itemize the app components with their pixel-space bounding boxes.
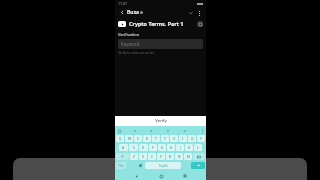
button[interactable]: Y (161, 135, 169, 142)
button[interactable]: W (125, 135, 133, 142)
button[interactable]: X (139, 153, 147, 160)
staticText: English (159, 164, 168, 168)
button[interactable]: Shift (116, 153, 129, 160)
staticText: E (137, 137, 139, 141)
staticText: Verification (118, 32, 140, 37)
button[interactable]: L (194, 144, 202, 151)
button[interactable]: Crypto Terms. Part 1 (118, 20, 203, 27)
button[interactable]: D (139, 144, 148, 151)
staticText: D (142, 146, 145, 150)
button[interactable]: R (143, 135, 151, 142)
staticText: Z (133, 155, 135, 159)
button[interactable]: S (129, 144, 138, 151)
staticText: V (160, 155, 162, 159)
staticText: R (146, 137, 148, 141)
button[interactable]: Q (116, 135, 124, 142)
button[interactable]: Recent apps (181, 172, 189, 180)
button[interactable]: O (188, 135, 196, 142)
button[interactable]: Home (157, 172, 165, 180)
button[interactable]: Fullscreen (197, 21, 203, 27)
staticText: L (197, 146, 199, 150)
staticText: . (185, 163, 187, 168)
button[interactable]: Keyword (118, 39, 203, 49)
staticText: M (187, 155, 190, 159)
staticText: Buxa (127, 9, 139, 16)
staticText: G (161, 146, 164, 150)
staticText: P (200, 137, 202, 141)
button[interactable]: Verify (115, 116, 206, 126)
button[interactable]: More options (195, 9, 203, 17)
button[interactable]: Z (130, 153, 138, 160)
staticText: 11:07 (118, 1, 127, 6)
button[interactable]: V (157, 153, 165, 160)
staticText: Verify to view our secret (118, 51, 154, 55)
staticText: O (191, 137, 194, 141)
staticText: C (151, 155, 154, 159)
staticText: Verify (155, 118, 167, 124)
staticText: N (178, 155, 181, 159)
staticText: W (128, 137, 131, 141)
button[interactable]: N (175, 153, 183, 160)
button[interactable]: Toolbar item (182, 128, 188, 134)
button[interactable]: H (167, 144, 175, 151)
staticText: I (182, 137, 184, 141)
staticText: U (173, 137, 176, 141)
button[interactable]: More (199, 128, 205, 134)
button[interactable]: E (134, 135, 142, 142)
staticText: Y (164, 137, 166, 141)
staticText: T (155, 137, 157, 141)
button[interactable]: Toolbar item (132, 128, 138, 134)
staticText: F (152, 146, 154, 150)
button[interactable]: B (166, 153, 174, 160)
button[interactable]: ?123 (116, 162, 126, 169)
button[interactable]: Buxa (127, 9, 143, 16)
staticText: X (142, 155, 144, 159)
staticText: J (180, 146, 181, 150)
staticText: B (169, 155, 172, 159)
staticText: S (133, 146, 135, 150)
button[interactable]: A (119, 144, 128, 151)
staticText: H (170, 146, 173, 150)
button[interactable]: G (158, 144, 166, 151)
button[interactable]: J (176, 144, 184, 151)
button[interactable]: I (179, 135, 187, 142)
button[interactable]: Google (116, 128, 122, 134)
button[interactable]: M (184, 153, 192, 160)
staticText: ?123 (118, 164, 124, 168)
button[interactable]: U (170, 135, 178, 142)
button[interactable]: C (148, 153, 156, 160)
button[interactable]: Toolbar item (165, 128, 171, 134)
button[interactable]: T (152, 135, 160, 142)
staticText: Q (119, 137, 122, 141)
staticText: Keyword (121, 41, 140, 47)
button[interactable]: Space (145, 162, 181, 169)
button[interactable]: Toolbar item (148, 128, 154, 134)
staticText: K (188, 146, 190, 150)
button[interactable]: Back (132, 172, 140, 180)
button[interactable]: P (197, 135, 205, 142)
button[interactable]: F (149, 144, 157, 151)
button[interactable]: Language (127, 162, 135, 169)
button[interactable]: Back (118, 8, 127, 17)
button[interactable]: Backspace (193, 153, 205, 160)
button[interactable]: Expand (187, 9, 195, 17)
staticText: A (122, 146, 125, 150)
staticText: Crypto Terms. Part 1 (129, 20, 184, 27)
button[interactable]: K (185, 144, 193, 151)
button[interactable]: Enter (191, 162, 205, 169)
staticText: , (130, 163, 132, 168)
button[interactable]: Emoji (136, 162, 144, 169)
